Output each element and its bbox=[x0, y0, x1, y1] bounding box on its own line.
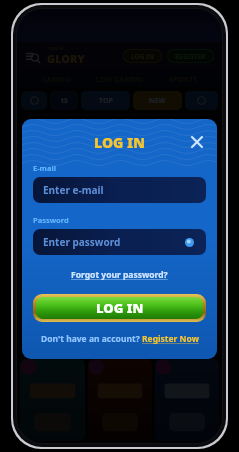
button[interactable]: tS bbox=[50, 91, 78, 110]
button[interactable]: Game bbox=[88, 359, 152, 441]
staticText: LOG IN bbox=[131, 52, 154, 61]
staticText: SPORTS bbox=[169, 74, 198, 84]
staticText: Don't have an account? bbox=[41, 333, 142, 345]
staticText: Enter password bbox=[43, 235, 121, 249]
button[interactable]: NEW bbox=[133, 91, 182, 110]
button[interactable]: Show password bbox=[182, 235, 196, 249]
button[interactable]: LOG IN bbox=[124, 50, 161, 62]
button[interactable]: TOP bbox=[81, 91, 130, 110]
button[interactable]: Close bbox=[188, 133, 206, 151]
button[interactable]: Category bbox=[21, 91, 47, 110]
button[interactable]: Forgot your password? bbox=[69, 267, 170, 283]
staticText: E-mail bbox=[33, 163, 56, 173]
staticText: tS bbox=[61, 96, 68, 106]
button[interactable]: Enter password bbox=[33, 229, 206, 255]
button[interactable]: Enter e-mail bbox=[33, 177, 206, 203]
button[interactable]: Game bbox=[20, 359, 85, 441]
button[interactable]: Category bbox=[185, 91, 218, 110]
staticText: Enter e-mail bbox=[43, 183, 104, 197]
button[interactable]: Don't have an account? bbox=[33, 333, 206, 345]
staticText: REGISTER bbox=[175, 52, 206, 61]
staticText: 1 TON OF bbox=[47, 46, 64, 51]
button[interactable]: Game bbox=[155, 359, 219, 441]
button[interactable]: LOG IN bbox=[36, 297, 203, 319]
staticText: Register Now bbox=[142, 333, 199, 345]
staticText: GLORY bbox=[47, 51, 85, 66]
staticText: LIVE CASINO bbox=[96, 74, 144, 84]
staticText: NEW bbox=[149, 96, 166, 106]
staticText: Password bbox=[33, 215, 69, 225]
staticText: LOG IN bbox=[94, 133, 145, 151]
staticText: LOG IN bbox=[96, 299, 144, 317]
staticText: Forgot your password? bbox=[71, 269, 168, 281]
button[interactable]: REGISTER bbox=[168, 50, 213, 62]
staticText: TOP bbox=[99, 96, 113, 106]
staticText: CASINO bbox=[42, 74, 72, 84]
